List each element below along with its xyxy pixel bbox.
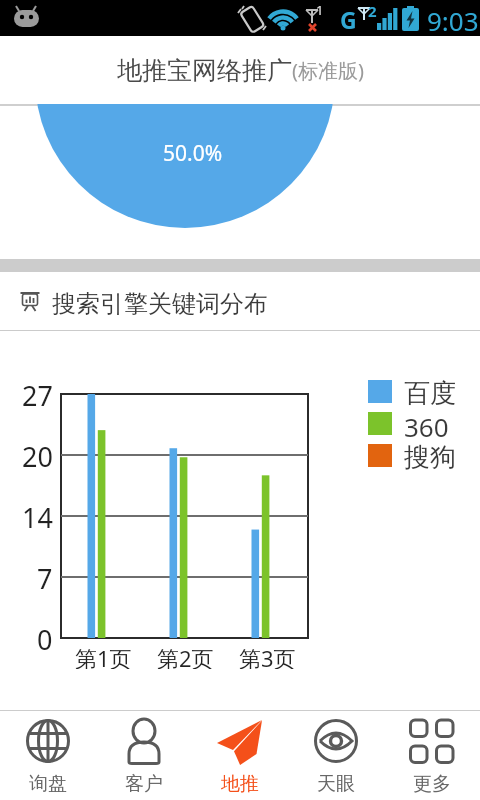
button[interactable]: 地推 [192, 710, 288, 800]
staticText: (标准版) [292, 57, 364, 84]
button[interactable]: 客户 [96, 710, 192, 800]
staticText: 1 [316, 1, 324, 15]
staticText: 百度 [404, 377, 456, 409]
staticText: 询盘 [29, 772, 67, 796]
button[interactable]: 更多 [384, 710, 480, 800]
staticText: 50.0% [163, 139, 223, 167]
staticText: 搜狗 [404, 441, 456, 473]
button[interactable]: 询盘 [0, 710, 96, 800]
staticText: 第3页 [239, 643, 296, 669]
staticText: 天眼 [317, 772, 355, 796]
staticText: 第1页 [75, 643, 132, 669]
staticText: 2 [368, 1, 377, 17]
staticText: 更多 [413, 772, 451, 796]
staticText: 第2页 [157, 643, 214, 669]
staticText: 搜索引擎关键词分布 [52, 289, 268, 315]
staticText: 27 [22, 377, 53, 407]
staticText: G [340, 4, 357, 32]
button[interactable]: 天眼 [288, 710, 384, 800]
staticText: 0 [37, 621, 53, 651]
staticText: 360 [404, 409, 449, 441]
staticText: 20 [22, 438, 53, 468]
staticText: 地推宝网络推广 [117, 55, 292, 86]
button[interactable] [0, 280, 480, 324]
staticText: 地推 [221, 772, 259, 796]
staticText: 14 [22, 499, 53, 529]
staticText: 7 [37, 560, 53, 590]
staticText: 9:03 [427, 3, 479, 33]
staticText: 客户 [125, 772, 163, 796]
